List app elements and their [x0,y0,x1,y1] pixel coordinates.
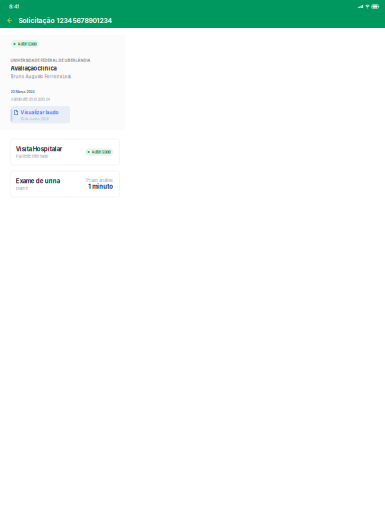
staticText: Solicitação 12345678901234 [19,16,113,25]
staticText: 8:41 [9,3,19,10]
staticText: 1 minuto [88,183,113,190]
staticText: Visita Hospitalar [16,145,62,153]
staticText: 20 Março 2024 [11,90,35,94]
staticText: 10 de Junho 2024 [20,117,48,121]
staticText: Avaliação clínica [11,65,57,72]
button[interactable]: Visita Hospitalar [10,139,119,165]
button[interactable]: Exame de urina [10,171,119,197]
staticText: Exame de urina [16,177,60,185]
staticText: Prazo análise [86,178,113,183]
staticText: Visualizar laudo [20,109,58,115]
staticText: Autorizado [91,150,110,154]
staticText: Bruno Augusto Ferreira Leal. [11,74,72,79]
staticText: Exame [16,186,28,191]
staticText: UNIVERSIDADE FEDERAL DE UBERLÂNDIA [11,58,91,63]
staticText: Válido até 20/03/2024 [11,97,51,102]
staticText: Paciente internado [16,154,48,159]
staticText: Autorizado [17,42,36,46]
button[interactable]: Solicitação 12345678901234 [0,14,118,27]
button[interactable]: Visualizar laudo [11,106,70,123]
